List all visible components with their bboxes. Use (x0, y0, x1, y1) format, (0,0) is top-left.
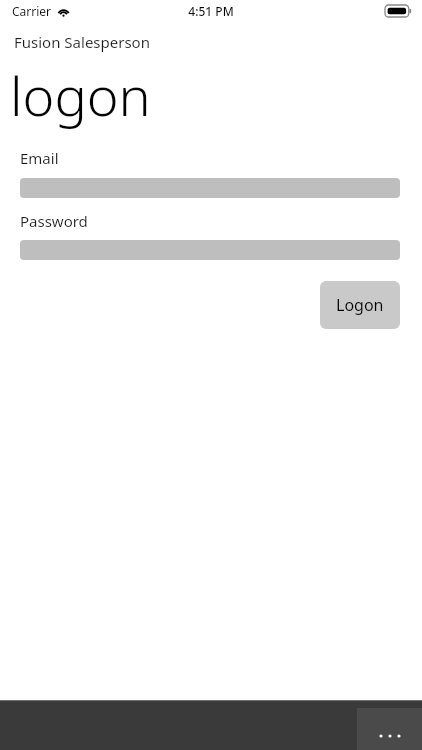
button[interactable]: More options (357, 708, 422, 750)
staticText: Password (20, 211, 88, 231)
staticText: Email (20, 148, 59, 168)
staticText: Logon (336, 294, 384, 316)
staticText: 4:51 PM (188, 3, 234, 19)
staticText: Carrier (12, 3, 52, 19)
button[interactable]: Logon (320, 281, 400, 329)
staticText: logon (10, 58, 151, 132)
staticText: Fusion Salesperson (14, 32, 150, 52)
